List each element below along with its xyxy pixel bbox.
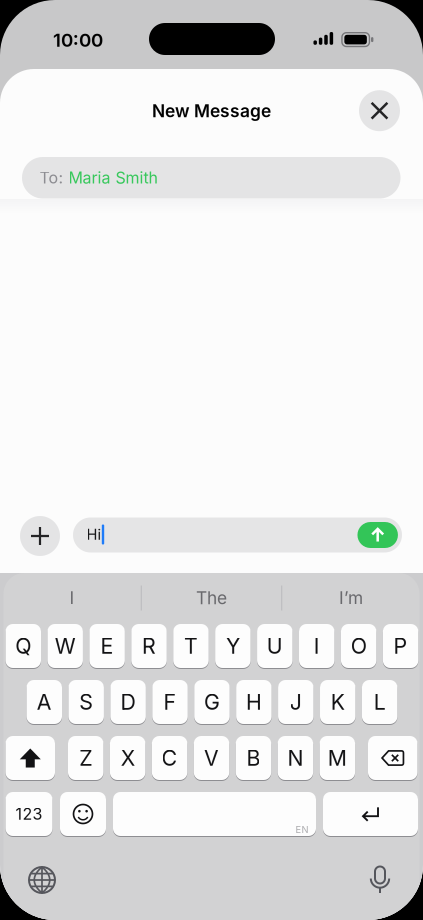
staticText: A [37, 689, 52, 715]
staticText: 123 [15, 805, 42, 823]
button[interactable]: T [173, 623, 209, 668]
staticText: X [121, 745, 135, 771]
button[interactable]: D [110, 679, 146, 724]
staticText: Y [226, 633, 240, 659]
staticText: W [55, 633, 76, 659]
staticText: T [184, 633, 198, 659]
staticText: C [162, 745, 178, 771]
button[interactable]: Z [68, 735, 103, 780]
staticText: To: [39, 168, 63, 187]
button[interactable]: 123 [5, 791, 52, 836]
staticText: K [331, 689, 345, 715]
button[interactable]: EN [113, 791, 316, 836]
button[interactable]: C [152, 735, 187, 780]
button[interactable]: The [151, 581, 271, 615]
button[interactable]: G [194, 679, 230, 724]
staticText: M [328, 745, 347, 771]
button[interactable] [73, 517, 402, 552]
button[interactable]: K [320, 679, 355, 724]
staticText: I [69, 588, 74, 608]
staticText: P [394, 633, 408, 659]
button[interactable] [359, 90, 400, 131]
staticText: Maria Smith [68, 168, 157, 187]
staticText: N [287, 745, 303, 771]
button[interactable] [20, 516, 60, 556]
staticText: Hi [86, 526, 101, 543]
staticText: U [267, 633, 283, 659]
button[interactable]: E [89, 623, 125, 668]
button[interactable] [323, 791, 418, 836]
staticText: Z [79, 745, 92, 771]
button[interactable] [5, 735, 55, 780]
staticText: O [351, 633, 367, 659]
staticText: H [246, 689, 262, 715]
button[interactable] [60, 791, 106, 836]
button[interactable]: Q [5, 623, 41, 668]
button[interactable]: X [110, 735, 145, 780]
staticText: F [163, 689, 176, 715]
button[interactable]: S [68, 679, 104, 724]
staticText: J [290, 689, 302, 715]
staticText: L [374, 689, 386, 715]
staticText: V [204, 745, 219, 771]
staticText: I [314, 633, 320, 659]
button[interactable]: N [278, 735, 313, 780]
button[interactable]: F [152, 679, 188, 724]
button[interactable] [357, 522, 398, 548]
staticText: The [196, 588, 227, 608]
staticText: I’m [339, 588, 363, 608]
button[interactable]: B [236, 735, 271, 780]
staticText: D [121, 689, 136, 715]
button[interactable] [368, 735, 417, 780]
button[interactable]: I’m [291, 581, 411, 615]
button[interactable]: I [299, 623, 334, 668]
button[interactable]: I [12, 581, 132, 615]
button[interactable]: U [257, 623, 293, 668]
staticText: B [246, 745, 260, 771]
button[interactable]: To: [22, 157, 400, 198]
button[interactable]: R [131, 623, 167, 668]
button[interactable]: M [320, 735, 355, 780]
staticText: E [101, 633, 114, 659]
button[interactable]: J [278, 679, 314, 724]
button[interactable]: L [362, 679, 397, 724]
button[interactable]: Y [215, 623, 251, 668]
button[interactable]: V [194, 735, 229, 780]
staticText: EN [295, 824, 308, 835]
button[interactable] [20, 858, 64, 902]
button[interactable]: A [26, 679, 62, 724]
button[interactable]: H [236, 679, 272, 724]
staticText: S [79, 689, 93, 715]
button[interactable] [358, 858, 402, 902]
staticText: R [142, 633, 156, 659]
button[interactable]: W [47, 623, 83, 668]
button[interactable]: P [383, 623, 418, 668]
staticText: New Message [152, 101, 271, 121]
button[interactable]: O [341, 623, 376, 668]
staticText: G [204, 689, 220, 715]
staticText: 10:00 [53, 29, 103, 51]
staticText: Q [15, 633, 31, 659]
